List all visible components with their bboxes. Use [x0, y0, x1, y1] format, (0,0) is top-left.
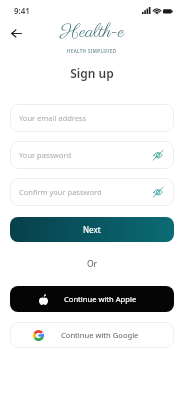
- staticText: Confirm your password: [19, 187, 102, 197]
- button[interactable]: Back: [4, 21, 28, 45]
- staticText: Sign up: [0, 65, 184, 81]
- staticText: Next: [83, 224, 101, 235]
- button[interactable]: Show password: [150, 147, 166, 163]
- staticText: 9:41: [14, 5, 30, 16]
- staticText: Or: [0, 258, 184, 270]
- staticText: Health-e: [60, 21, 125, 46]
- staticText: Your email address: [19, 113, 87, 123]
- button[interactable]: Continue with Google: [10, 322, 174, 348]
- button[interactable]: Show password: [150, 184, 166, 200]
- staticText: Continue with Google: [61, 330, 139, 340]
- staticText: HEALTH SIMPLIFIED: [67, 48, 117, 54]
- button[interactable]: Your email address: [10, 104, 174, 132]
- staticText: Continue with Apple: [64, 294, 137, 304]
- button[interactable]: Continue with Apple: [10, 286, 174, 312]
- button[interactable]: Your password: [10, 141, 174, 169]
- button[interactable]: Next: [10, 217, 174, 242]
- staticText: Your password: [19, 150, 72, 160]
- button[interactable]: Confirm your password: [10, 178, 174, 206]
